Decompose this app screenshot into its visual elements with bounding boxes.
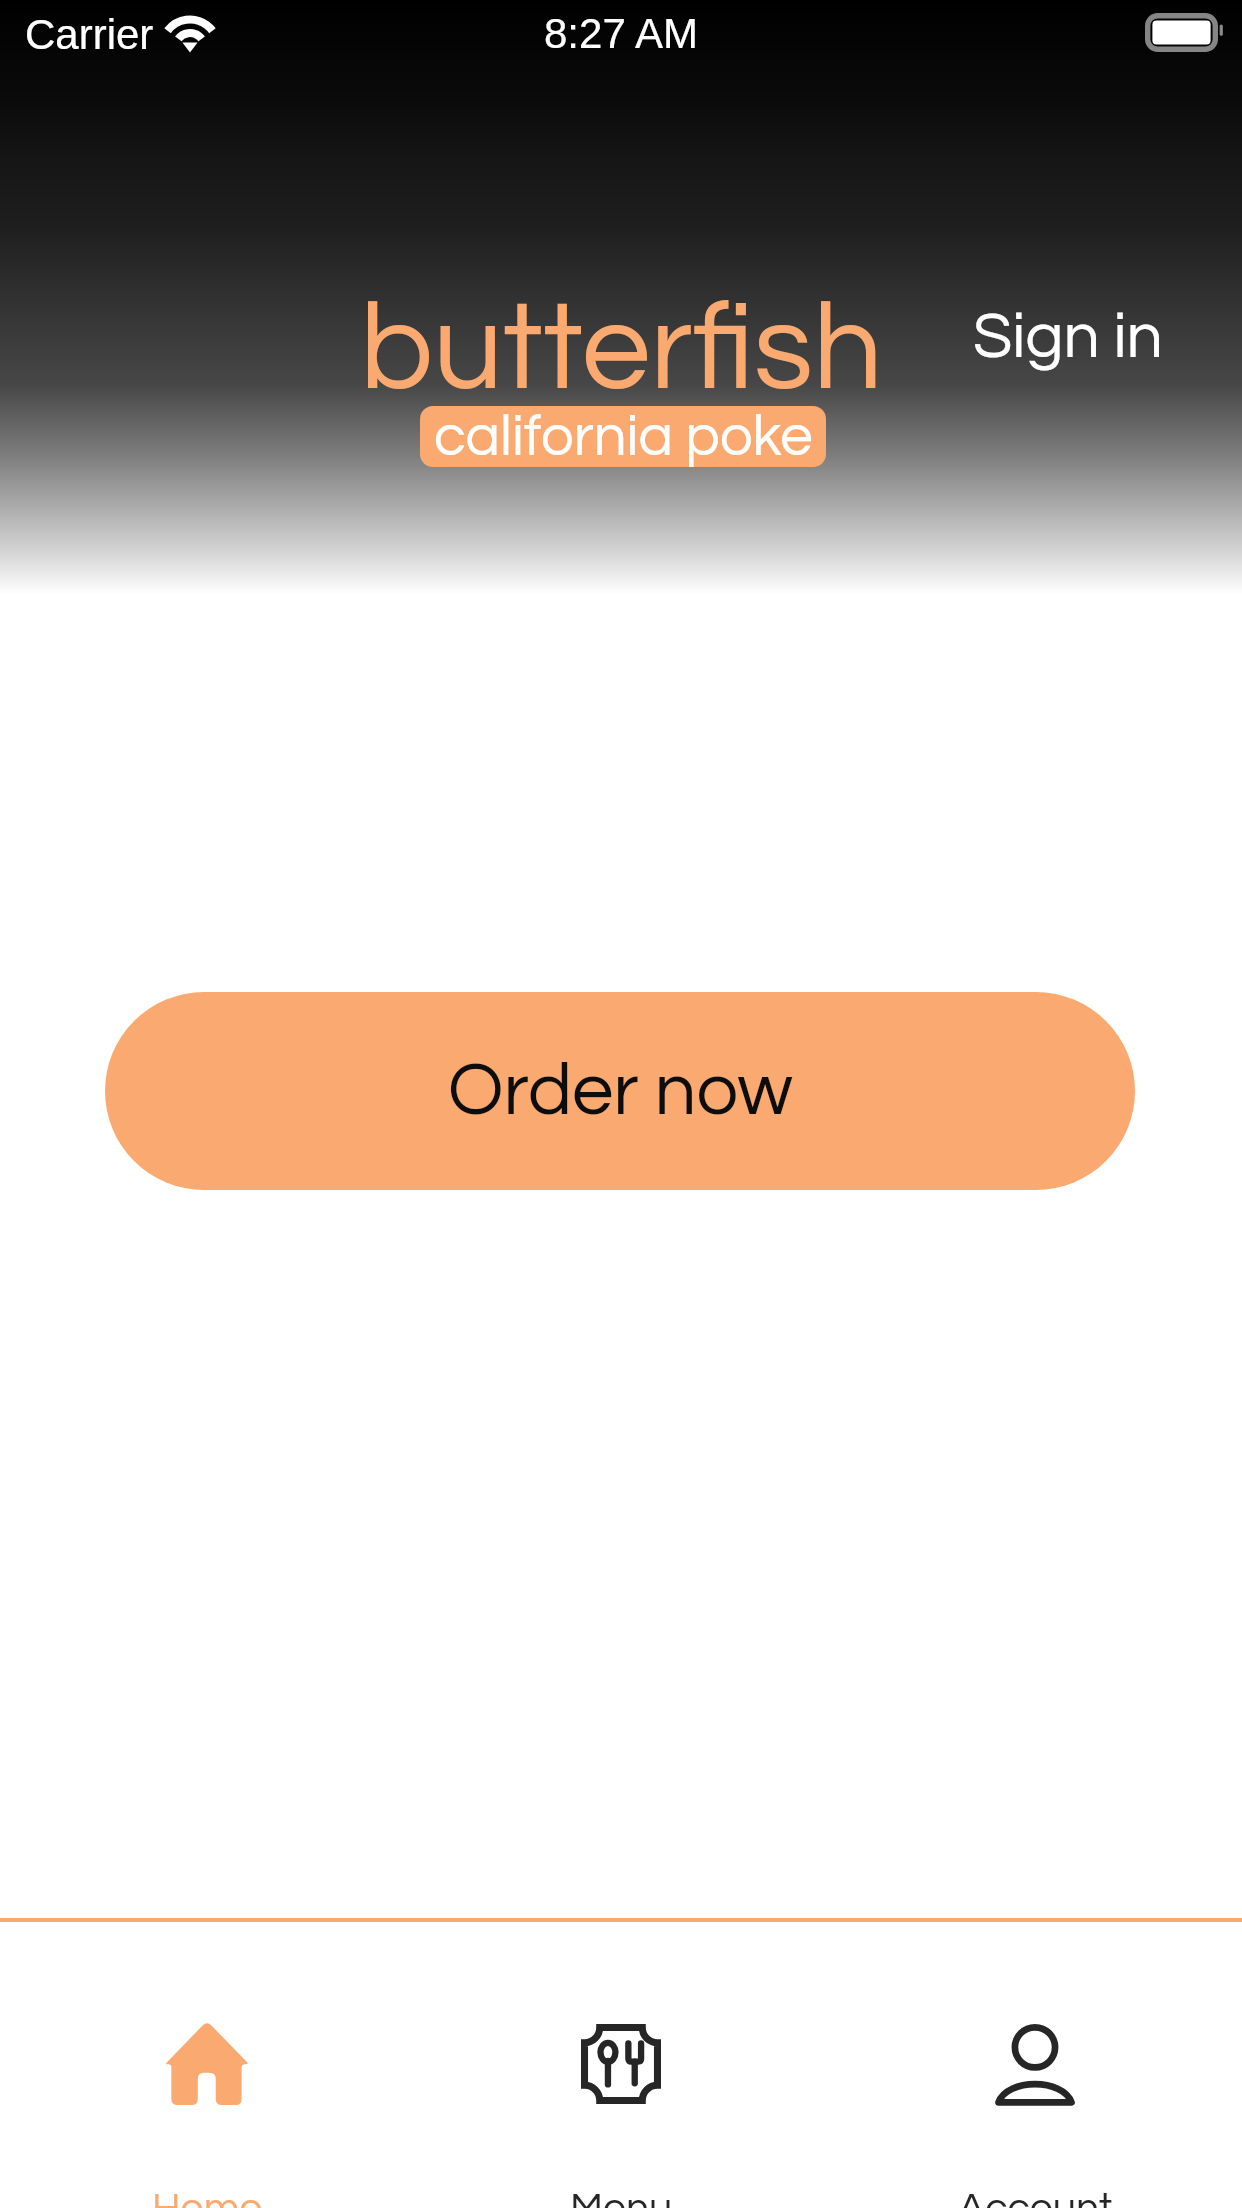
button[interactable]: Account bbox=[828, 1918, 1242, 2208]
staticText: butterfish bbox=[360, 287, 883, 414]
staticText: Sign in bbox=[973, 305, 1163, 371]
button[interactable]: Home bbox=[0, 1918, 414, 2208]
button[interactable]: Menu bbox=[414, 1918, 828, 2208]
staticText: california poke bbox=[434, 407, 813, 467]
staticText: Carrier bbox=[25, 11, 154, 58]
staticText: Menu bbox=[570, 2187, 673, 2208]
button[interactable]: Sign in bbox=[973, 305, 1163, 371]
staticText: 8:27 AM bbox=[544, 10, 699, 57]
button[interactable]: Order now bbox=[105, 992, 1135, 1190]
staticText: Order now bbox=[448, 1053, 793, 1129]
staticText: Home bbox=[152, 2187, 263, 2208]
staticText: Account bbox=[958, 2187, 1113, 2208]
